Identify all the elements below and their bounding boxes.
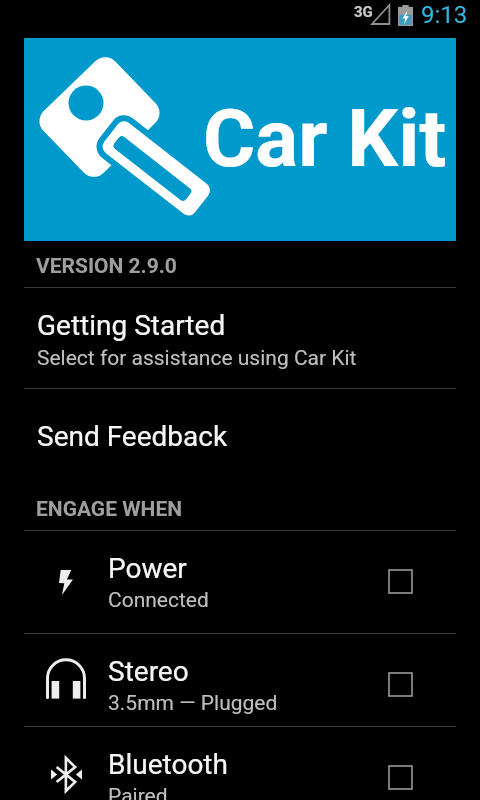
button[interactable]: Power checkbox <box>0 531 480 623</box>
button[interactable]: Bluetooth checkbox <box>389 766 412 789</box>
staticText: 9:13 <box>421 1 468 29</box>
staticText: ENGAGE WHEN <box>36 497 183 522</box>
button[interactable]: Stereo checkbox <box>0 634 480 726</box>
staticText: Send Feedback <box>37 420 228 453</box>
staticText: Paired <box>108 784 168 800</box>
staticText: 3G <box>354 3 373 21</box>
staticText: Bluetooth <box>108 748 228 781</box>
button[interactable]: Stereo checkbox <box>389 673 412 696</box>
button[interactable] <box>0 289 480 388</box>
staticText: Car Kit <box>203 92 447 186</box>
staticText: VERSION 2.9.0 <box>36 254 177 279</box>
staticText: Power <box>108 552 187 585</box>
staticText: 3.5mm — Plugged <box>108 691 278 716</box>
staticText: Select for assistance using Car Kit <box>37 346 357 371</box>
staticText: Getting Started <box>37 309 226 342</box>
staticText: Stereo <box>108 655 189 688</box>
staticText: Connected <box>108 588 209 613</box>
button[interactable]: Power checkbox <box>389 570 412 593</box>
button[interactable]: Bluetooth checkbox <box>0 727 480 800</box>
button[interactable] <box>0 389 480 469</box>
